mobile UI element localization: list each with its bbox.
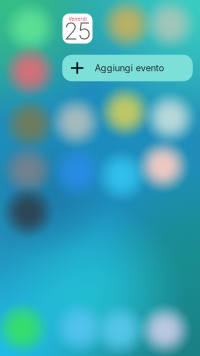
button[interactable]: Aggiungi evento (62, 55, 193, 81)
staticText: Aggiungi evento (95, 62, 164, 73)
staticText: Venerdì (68, 16, 86, 22)
staticText: 25 (64, 17, 91, 45)
